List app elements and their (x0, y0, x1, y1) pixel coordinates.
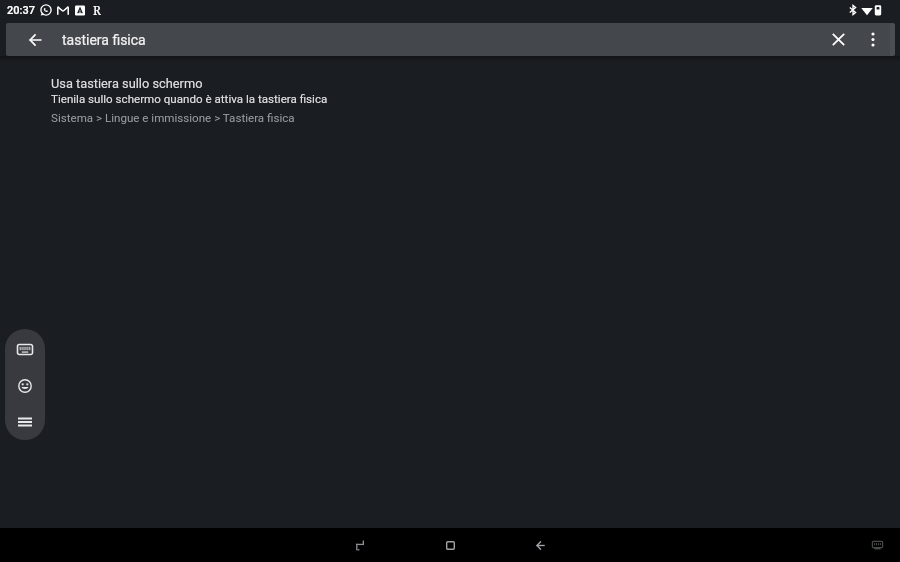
button[interactable]: Clear search (821, 23, 855, 56)
button[interactable]: tastiera fisica (55, 23, 153, 56)
button[interactable]: More options (857, 23, 889, 56)
staticText: Usa tastiera sullo schermo (51, 76, 203, 91)
button[interactable]: Usa tastiera sullo schermo (0, 70, 900, 126)
button[interactable]: Emoji (5, 371, 45, 401)
button[interactable]: Menu (5, 408, 45, 436)
button[interactable]: Back (520, 528, 560, 562)
staticText: tastiera fisica (62, 32, 146, 48)
button[interactable]: Hide keyboard (339, 528, 379, 562)
button[interactable]: Home (430, 528, 470, 562)
button[interactable]: Keyboard (5, 334, 45, 364)
staticText: Sistema > Lingue e immissione > Tastiera… (51, 111, 295, 125)
button[interactable]: Back (19, 23, 51, 56)
button[interactable]: Switch keyboard (860, 528, 894, 560)
staticText: R (93, 2, 101, 18)
staticText: Tienila sullo schermo quando è attiva la… (51, 92, 328, 106)
staticText: 20:37 (7, 4, 35, 17)
